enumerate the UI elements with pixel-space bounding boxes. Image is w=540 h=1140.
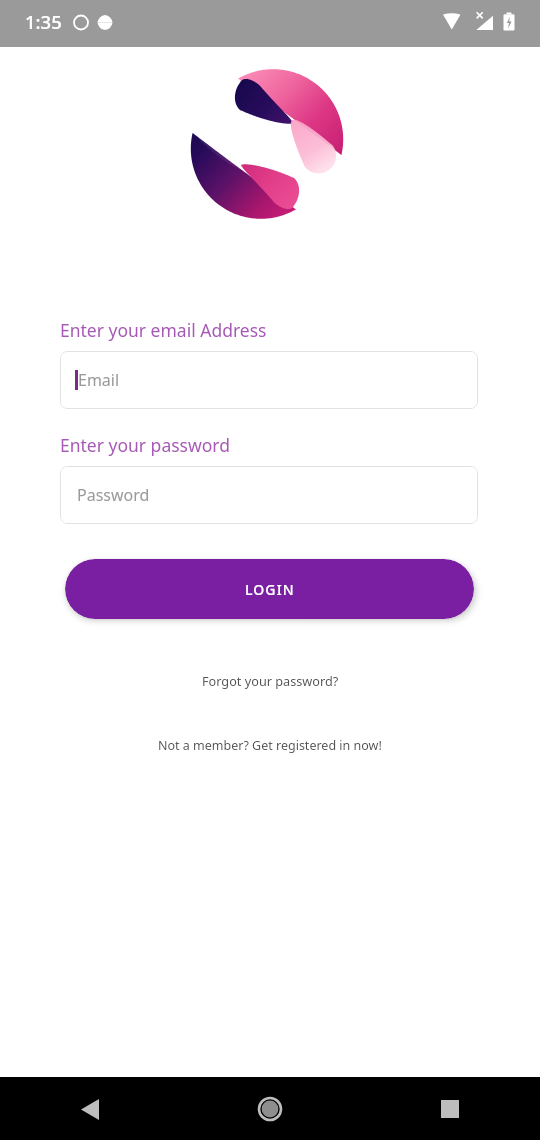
staticText: Forgot your password? [202,672,339,689]
staticText: Enter your email Address [60,318,267,342]
button[interactable]: Recents [423,1082,477,1136]
button[interactable]: Home [243,1082,297,1136]
staticText: Not a member? Get registered in now! [158,737,382,754]
button[interactable]: Email [60,351,478,409]
staticText: 1:35 [25,9,62,34]
button[interactable]: LOGIN [65,559,474,619]
staticText: Enter your password [60,433,230,457]
staticText: LOGIN [245,580,295,599]
button[interactable]: Password [60,466,478,524]
button[interactable]: Not a member? Get registered in now! [148,733,392,758]
staticText: Password [77,484,150,506]
staticText: Email [78,369,120,391]
button[interactable]: Back [63,1082,117,1136]
button[interactable]: Forgot your password? [192,668,349,693]
